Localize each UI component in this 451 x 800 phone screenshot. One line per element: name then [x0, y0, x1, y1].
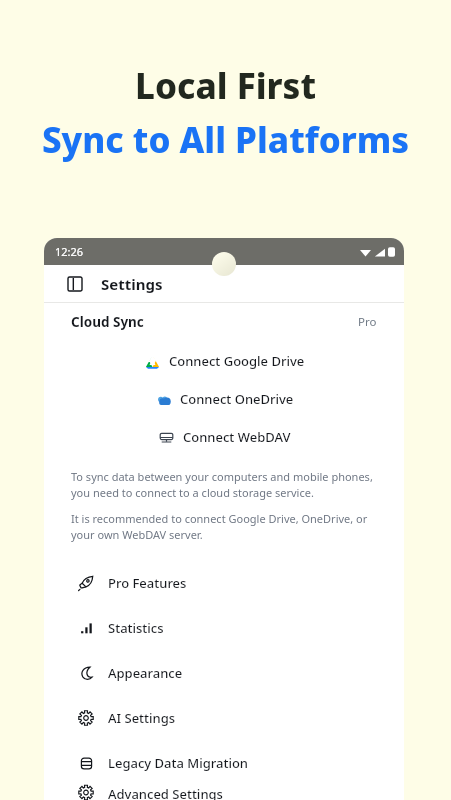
staticText: To sync data between your computers and … [71, 469, 377, 500]
staticText: Settings [101, 274, 163, 294]
button[interactable]: Connect OneDrive [147, 387, 302, 411]
button[interactable]: AI Settings [44, 695, 404, 740]
button[interactable]: Toggle sidebar [62, 271, 88, 297]
button[interactable]: Advanced Settings [44, 785, 404, 800]
staticText: Cloud Sync [71, 313, 144, 331]
staticText: 12:26 [55, 244, 84, 259]
staticText: Pro Features [108, 574, 187, 592]
staticText: Appearance [108, 664, 183, 682]
staticText: Connect Google Drive [169, 352, 305, 370]
staticText: Sync to All Platforms [0, 116, 451, 164]
staticText: Local First [0, 62, 451, 110]
staticText: Connect OneDrive [180, 390, 294, 408]
staticText: AI Settings [108, 709, 176, 727]
button[interactable]: Connect WebDAV [150, 425, 299, 449]
button[interactable]: Pro [358, 314, 377, 330]
button[interactable]: Appearance [44, 650, 404, 695]
staticText: Connect WebDAV [183, 428, 291, 446]
button[interactable]: Pro Features [44, 560, 404, 605]
button[interactable]: Legacy Data Migration [44, 740, 404, 785]
staticText: It is recommended to connect Google Driv… [71, 511, 377, 542]
staticText: Legacy Data Migration [108, 754, 249, 772]
staticText: Statistics [108, 619, 164, 637]
button[interactable]: Connect Google Drive [136, 349, 313, 373]
button[interactable]: Statistics [44, 605, 404, 650]
button[interactable]: Toggle sidebar [44, 265, 404, 302]
staticText: Advanced Settings [108, 785, 223, 800]
